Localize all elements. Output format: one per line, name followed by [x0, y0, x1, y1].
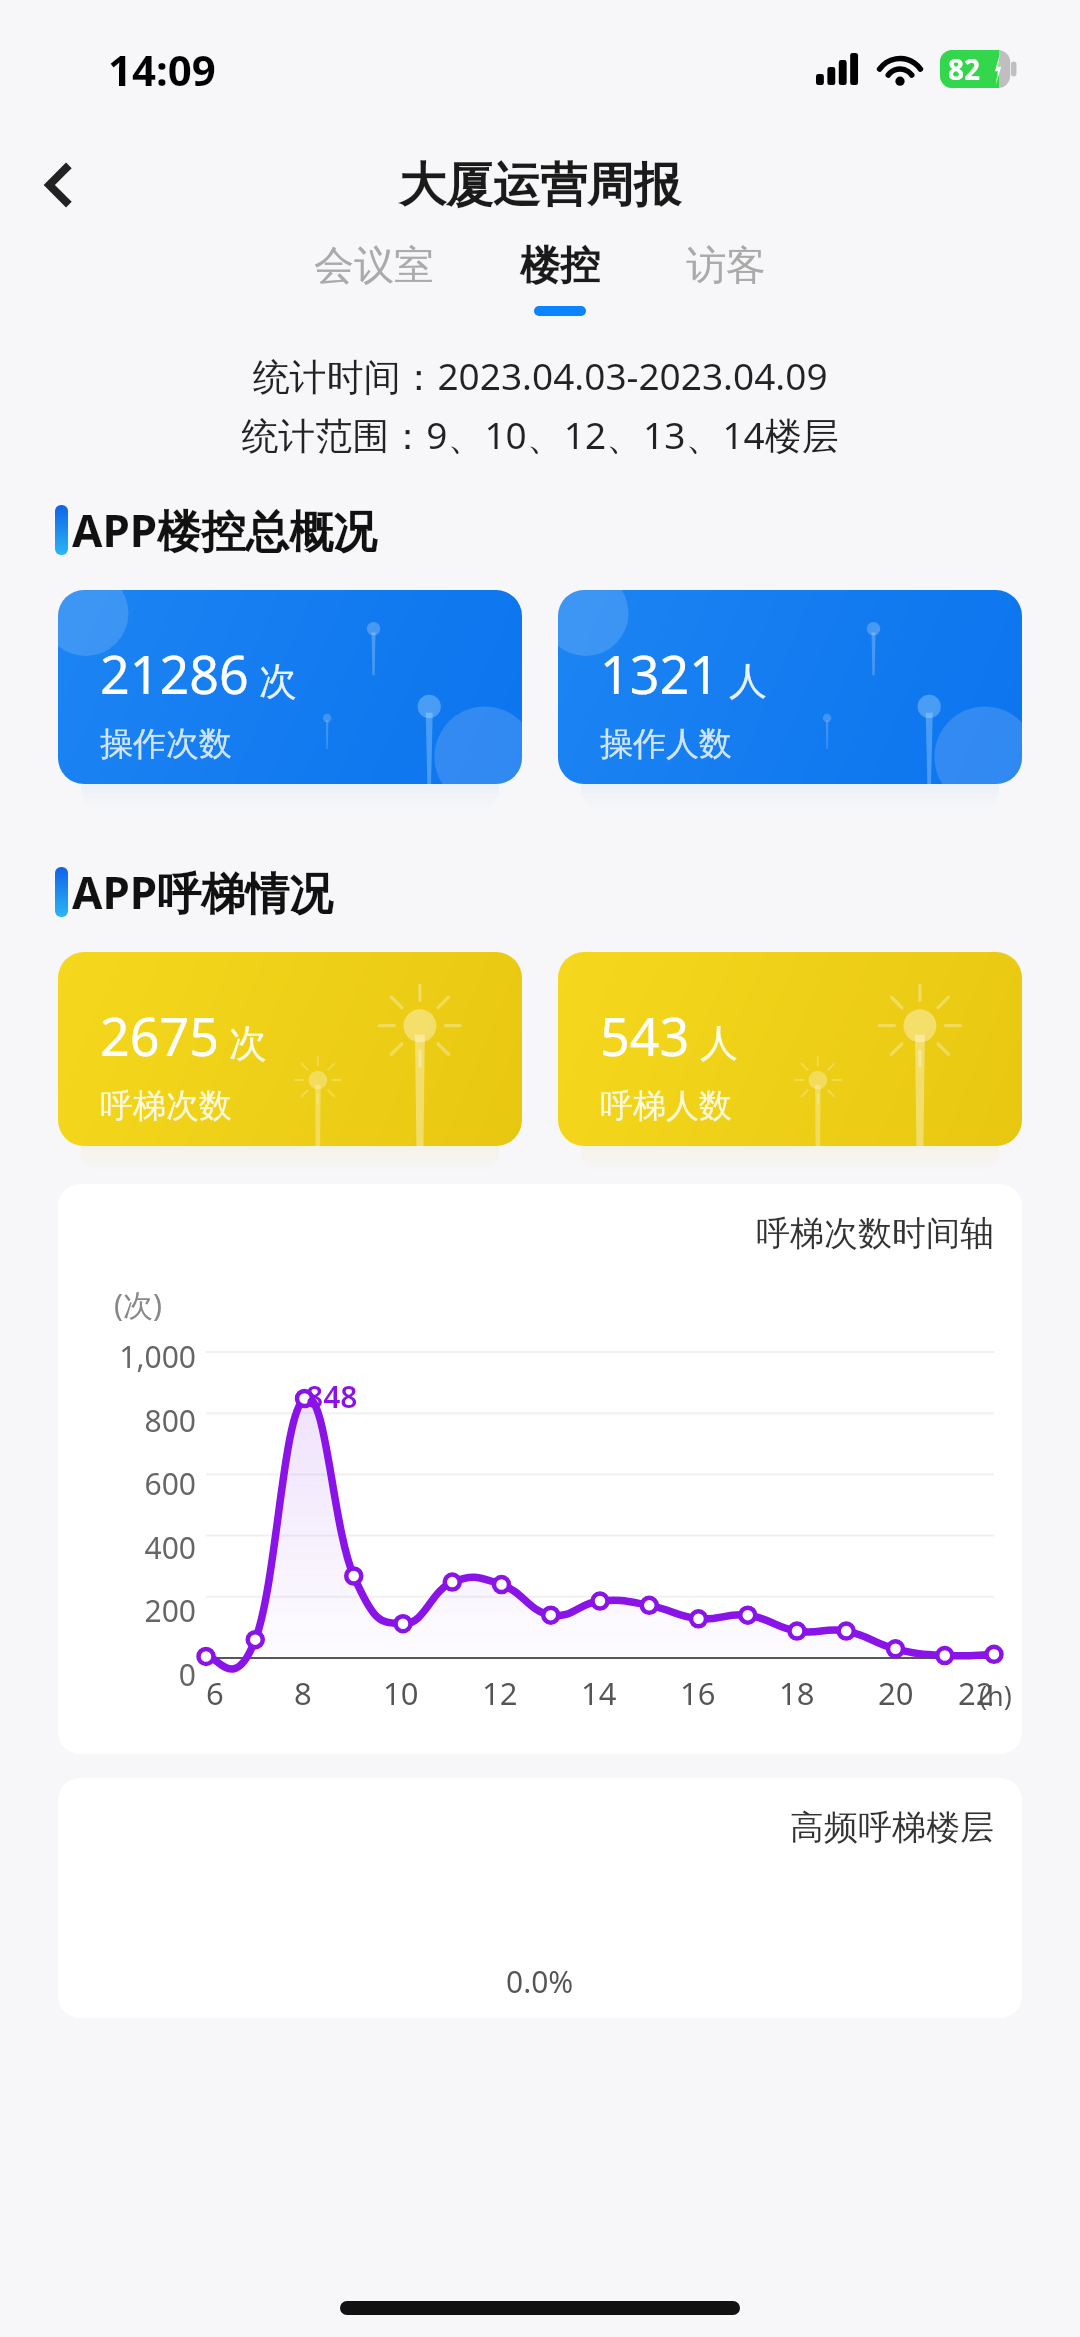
- button[interactable]: 543: [558, 952, 1022, 1146]
- staticText: 848: [306, 1376, 358, 1417]
- staticText: 14:09: [108, 41, 216, 98]
- staticText: 200: [76, 1590, 196, 1631]
- staticText: 21286: [100, 638, 249, 709]
- staticText: 1321: [600, 638, 719, 709]
- staticText: 18: [779, 1672, 815, 1714]
- button[interactable]: Back: [14, 140, 104, 230]
- staticText: 10: [383, 1672, 419, 1714]
- staticText: 543: [600, 1000, 690, 1071]
- staticText: 800: [76, 1400, 196, 1441]
- staticText: 600: [76, 1463, 196, 1504]
- staticText: 20: [878, 1672, 914, 1714]
- staticText: 8: [294, 1672, 312, 1714]
- button[interactable]: 访客: [672, 240, 780, 306]
- staticText: 操作人数: [600, 723, 732, 765]
- staticText: (次): [114, 1284, 162, 1325]
- staticText: 0.0%: [506, 1961, 574, 2002]
- staticText: 人: [729, 657, 767, 705]
- staticText: APP呼梯情况: [72, 862, 334, 922]
- staticText: 操作次数: [100, 723, 232, 765]
- staticText: 大厦运营周报: [399, 156, 681, 215]
- staticText: 1,000: [76, 1336, 196, 1377]
- button[interactable]: 21286: [58, 590, 522, 784]
- staticText: (h): [979, 1677, 1012, 1714]
- staticText: 统计范围：9、10、12、13、14楼层: [241, 409, 839, 460]
- button[interactable]: 2675: [58, 952, 522, 1146]
- staticText: APP楼控总概况: [72, 500, 378, 560]
- staticText: 呼梯次数时间轴: [756, 1212, 994, 1255]
- staticText: 高频呼梯楼层: [790, 1806, 994, 1849]
- staticText: 人: [700, 1019, 738, 1067]
- staticText: 会议室: [314, 240, 434, 290]
- button[interactable]: 1321: [558, 590, 1022, 784]
- staticText: 22: [958, 1672, 994, 1714]
- staticText: 82: [948, 50, 981, 88]
- staticText: 2675: [100, 1000, 219, 1071]
- staticText: 次: [259, 657, 297, 705]
- staticText: 次: [229, 1019, 267, 1067]
- staticText: 14: [581, 1672, 617, 1714]
- staticText: 呼梯人数: [600, 1085, 732, 1127]
- staticText: 6: [206, 1672, 224, 1714]
- staticText: 400: [76, 1527, 196, 1568]
- button[interactable]: 会议室: [300, 240, 448, 306]
- staticText: 0: [76, 1654, 196, 1695]
- staticText: 统计时间：2023.04.03-2023.04.09: [252, 350, 828, 401]
- staticText: 楼控: [520, 240, 600, 290]
- button[interactable]: 楼控: [506, 240, 614, 316]
- staticText: 16: [680, 1672, 716, 1714]
- staticText: 访客: [686, 240, 766, 290]
- staticText: 呼梯次数: [100, 1085, 232, 1127]
- staticText: 12: [482, 1672, 518, 1714]
